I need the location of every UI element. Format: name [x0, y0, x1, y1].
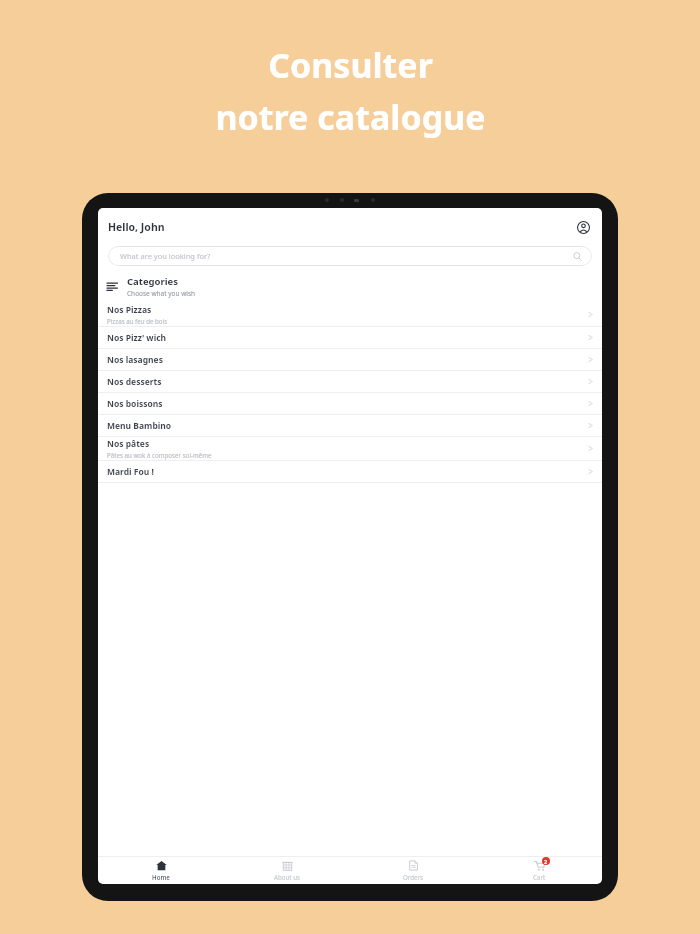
staticText: Mardi Fou !	[107, 466, 154, 478]
staticText: Menu Bambino	[107, 420, 172, 432]
staticText: Home	[152, 873, 170, 881]
button[interactable]: Nos pâtes	[98, 437, 602, 460]
staticText: Cart	[533, 873, 546, 881]
staticText: Nos desserts	[107, 376, 162, 388]
button[interactable]: Nos Pizzas	[98, 303, 602, 326]
other: Search	[573, 252, 582, 261]
staticText: Choose what you wish	[127, 289, 196, 298]
staticText: Orders	[403, 873, 424, 881]
staticText: Hello, John	[108, 220, 165, 234]
staticText: Consulter	[268, 42, 433, 88]
button[interactable]: Nos lasagnes	[98, 349, 602, 370]
staticText: notre catalogue	[215, 94, 486, 140]
staticText: What are you looking for?	[120, 251, 211, 261]
button[interactable]: Cart	[476, 857, 602, 884]
button[interactable]: Menu Bambino	[98, 415, 602, 436]
button[interactable]: Account	[572, 216, 594, 238]
staticText: Nos boissons	[107, 398, 163, 410]
button[interactable]: Nos boissons	[98, 393, 602, 414]
staticText: 2	[544, 858, 548, 865]
button[interactable]: Orders	[350, 857, 476, 884]
staticText: Pâtes au wok à composer soi-même	[107, 451, 212, 459]
staticText: Pizzas au feu de bois	[107, 317, 168, 325]
button[interactable]: Mardi Fou !	[98, 461, 602, 482]
staticText: Nos Pizz' wich	[107, 332, 167, 344]
staticText: Nos lasagnes	[107, 354, 163, 366]
button[interactable]: Nos desserts	[98, 371, 602, 392]
staticText: Categories	[127, 275, 179, 288]
button[interactable]: About us	[224, 857, 350, 884]
staticText: Nos Pizzas	[107, 304, 152, 316]
button[interactable]: Nos Pizz' wich	[98, 327, 602, 348]
staticText: Nos pâtes	[107, 438, 150, 450]
staticText: About us	[274, 873, 300, 881]
button[interactable]: What are you looking for?	[108, 246, 592, 266]
button[interactable]: Home	[98, 857, 224, 884]
